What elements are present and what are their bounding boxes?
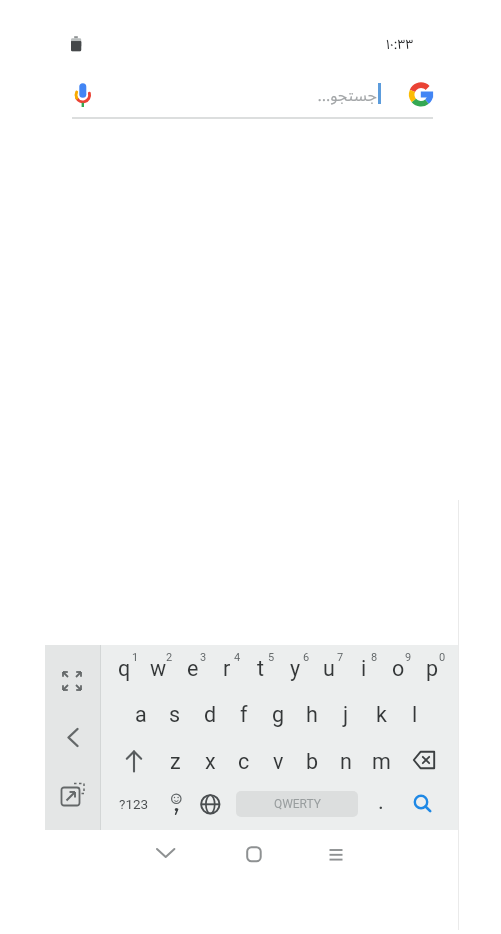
staticText: f	[240, 702, 248, 727]
button[interactable]: g	[256, 691, 300, 737]
button[interactable]: r	[205, 645, 249, 691]
button[interactable]: k	[359, 691, 403, 737]
staticText: 1	[132, 651, 139, 664]
button[interactable]: e	[171, 645, 215, 691]
staticText: 7	[337, 651, 344, 664]
button[interactable]: QWERTY	[236, 791, 358, 817]
button[interactable]	[322, 840, 350, 868]
staticText: 4	[234, 651, 241, 664]
button[interactable]: b	[290, 738, 334, 784]
staticText: QWERTY	[274, 797, 321, 811]
button[interactable]	[407, 788, 437, 818]
staticText: h	[306, 702, 318, 727]
staticText: m	[372, 749, 391, 774]
staticText: ?123	[119, 796, 149, 812]
staticText: n	[340, 749, 352, 774]
staticText: o	[392, 656, 405, 681]
button[interactable]: s	[153, 691, 197, 737]
staticText: a	[135, 702, 147, 727]
button[interactable]: جستجو...	[270, 82, 377, 108]
button[interactable]	[59, 668, 85, 694]
staticText: z	[170, 749, 181, 774]
staticText: t	[257, 656, 265, 681]
staticText: l	[412, 702, 418, 727]
staticText: j	[343, 702, 349, 727]
button[interactable]: y	[273, 645, 317, 691]
staticText: k	[376, 702, 387, 727]
staticText: p	[426, 656, 439, 681]
button[interactable]: z	[153, 738, 197, 784]
button[interactable]: j	[324, 691, 368, 737]
staticText: w	[150, 656, 167, 681]
staticText: ۱۰:۳۳	[385, 35, 413, 53]
button[interactable]	[196, 790, 225, 819]
staticText: 2	[166, 651, 173, 664]
button[interactable]: o	[376, 645, 420, 691]
button[interactable]	[120, 747, 148, 775]
button[interactable]: x	[188, 738, 232, 784]
button[interactable]: n	[324, 738, 368, 784]
staticText: g	[272, 702, 285, 727]
button[interactable]	[408, 81, 435, 108]
button[interactable]: m	[359, 738, 403, 784]
staticText: x	[205, 749, 216, 774]
button[interactable]: a	[119, 691, 163, 737]
staticText: 5	[268, 651, 275, 664]
staticText: 9	[405, 651, 412, 664]
button[interactable]	[240, 840, 268, 868]
staticText: 3	[200, 651, 207, 664]
button[interactable]: f	[222, 691, 266, 737]
button[interactable]: t	[239, 645, 283, 691]
button[interactable]: c	[222, 738, 266, 784]
staticText: d	[204, 702, 217, 727]
staticText: q	[118, 656, 131, 681]
staticText: .	[378, 789, 384, 815]
button[interactable]: l	[393, 691, 437, 737]
staticText: b	[306, 749, 319, 774]
button[interactable]: w	[136, 645, 180, 691]
staticText: s	[169, 702, 181, 727]
staticText: 6	[303, 651, 310, 664]
button[interactable]: q	[102, 645, 146, 691]
staticText: r	[223, 656, 231, 681]
button[interactable]: d	[188, 691, 232, 737]
button[interactable]	[58, 780, 87, 809]
button[interactable]	[152, 840, 180, 868]
button[interactable]	[61, 725, 86, 750]
staticText: 8	[371, 651, 378, 664]
staticText: c	[238, 749, 250, 774]
button[interactable]: u	[307, 645, 351, 691]
button[interactable]: i	[342, 645, 386, 691]
staticText: u	[323, 656, 335, 681]
staticText: e	[187, 656, 199, 681]
button[interactable]: p	[410, 645, 454, 691]
staticText: i	[361, 656, 367, 681]
button[interactable]: ?123	[112, 781, 156, 827]
staticText: جستجو...	[317, 84, 377, 106]
staticText: y	[290, 656, 301, 681]
button[interactable]: h	[290, 691, 334, 737]
button[interactable]	[72, 78, 94, 110]
button[interactable]: .	[359, 779, 403, 825]
staticText: 0	[439, 651, 446, 664]
staticText: v	[273, 749, 284, 774]
button[interactable]	[162, 786, 191, 822]
button[interactable]: v	[256, 738, 300, 784]
button[interactable]	[411, 749, 438, 771]
